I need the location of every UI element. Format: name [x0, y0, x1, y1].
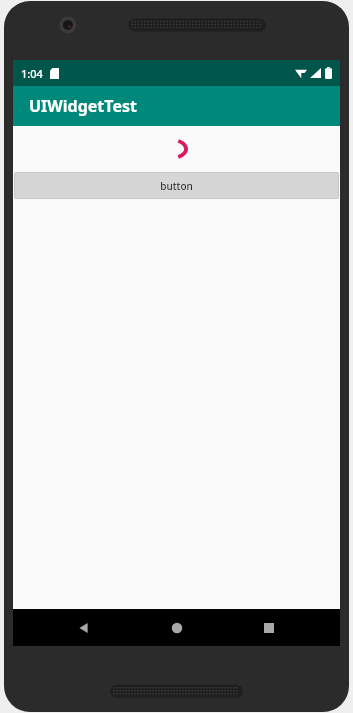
staticText: UIWidgetTest: [29, 95, 137, 117]
button[interactable]: Recent apps: [247, 609, 291, 646]
button[interactable]: Back: [62, 609, 106, 646]
button[interactable]: button: [14, 172, 339, 199]
staticText: 1:04: [21, 66, 43, 81]
button[interactable]: Home: [155, 609, 199, 646]
staticText: button: [160, 179, 193, 193]
